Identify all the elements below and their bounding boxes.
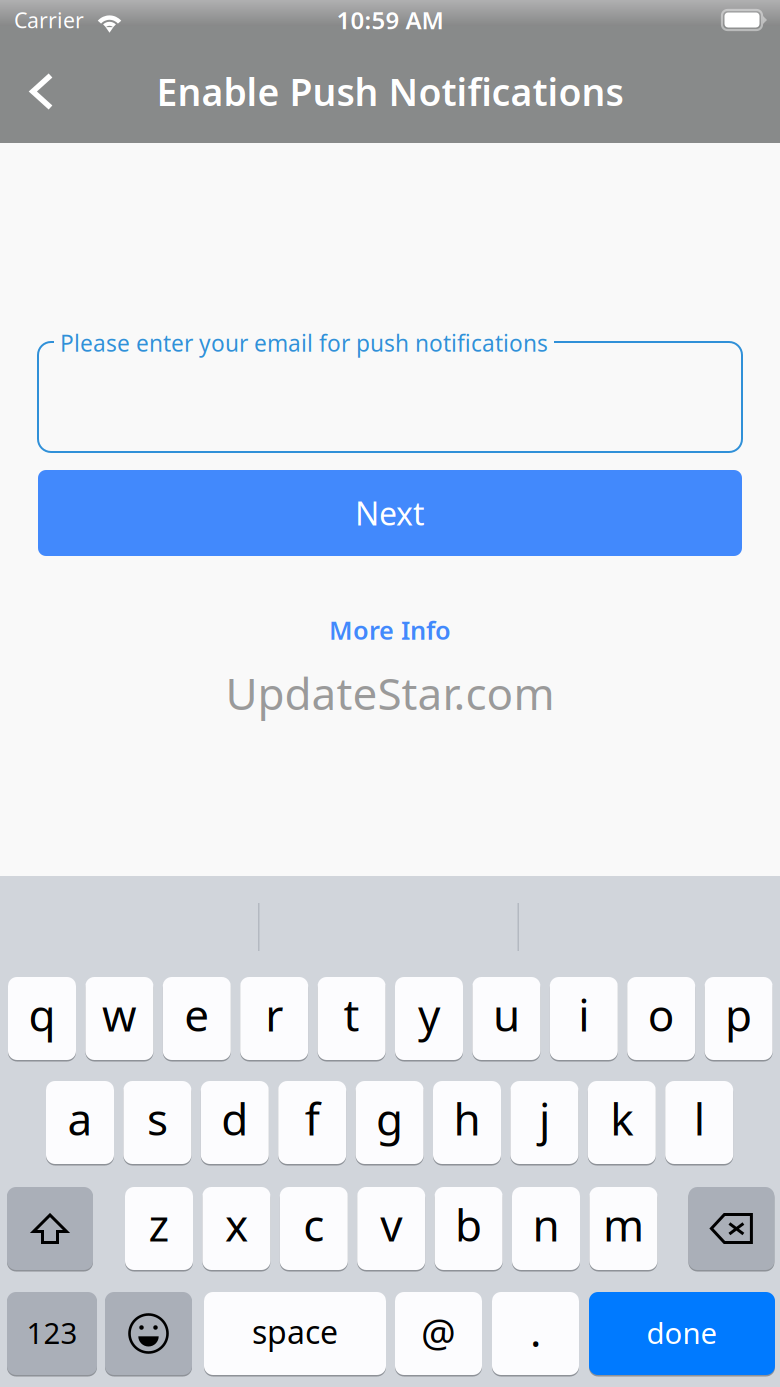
staticText: .	[530, 1302, 541, 1359]
button[interactable]: e	[163, 977, 231, 1060]
button[interactable]: z	[125, 1187, 193, 1270]
button[interactable]: Delete	[688, 1187, 774, 1270]
staticText: q	[28, 985, 55, 1044]
staticText: 10:59 AM	[336, 4, 443, 36]
button[interactable]: done	[589, 1292, 775, 1375]
button[interactable]: s	[123, 1081, 191, 1164]
staticText: n	[532, 1195, 559, 1254]
button[interactable]: @	[395, 1292, 482, 1375]
button[interactable]: .	[492, 1292, 579, 1375]
button[interactable]: w	[85, 977, 153, 1060]
staticText: UpdateStar.com	[225, 664, 554, 722]
button[interactable]: a	[46, 1081, 114, 1164]
staticText: space	[252, 1310, 338, 1353]
staticText: h	[453, 1089, 480, 1148]
staticText: v	[380, 1195, 402, 1254]
button[interactable]: 123	[7, 1292, 97, 1375]
button[interactable]: v	[357, 1187, 425, 1270]
staticText: c	[303, 1195, 324, 1254]
staticText: w	[102, 985, 137, 1044]
button[interactable]: Shift	[7, 1187, 93, 1270]
staticText: @	[421, 1306, 456, 1357]
staticText: u	[493, 985, 520, 1044]
staticText: f	[305, 1089, 320, 1148]
staticText: r	[265, 985, 283, 1044]
button[interactable]: y	[395, 977, 463, 1060]
staticText: y	[418, 985, 440, 1044]
staticText: Please enter your email for push notific…	[60, 328, 548, 358]
button[interactable]: t	[318, 977, 386, 1060]
staticText: l	[694, 1089, 705, 1148]
button[interactable]: h	[433, 1081, 501, 1164]
staticText: i	[578, 985, 589, 1044]
button[interactable]: k	[588, 1081, 656, 1164]
staticText: b	[455, 1195, 482, 1254]
staticText: k	[610, 1089, 633, 1148]
button[interactable]: q	[8, 977, 76, 1060]
button[interactable]: l	[665, 1081, 733, 1164]
button[interactable]: d	[201, 1081, 269, 1164]
button[interactable]: r	[240, 977, 308, 1060]
staticText: e	[184, 985, 209, 1044]
staticText: p	[725, 985, 752, 1044]
staticText: z	[148, 1195, 169, 1254]
staticText: d	[221, 1089, 248, 1148]
button[interactable]: Back	[0, 41, 71, 142]
button[interactable]: Next	[38, 470, 742, 556]
button[interactable]: n	[512, 1187, 580, 1270]
button[interactable]: space	[204, 1292, 386, 1375]
button[interactable]: c	[280, 1187, 348, 1270]
staticText: m	[603, 1195, 644, 1254]
staticText: More Info	[329, 613, 451, 647]
staticText: 123	[26, 1313, 77, 1352]
staticText: x	[225, 1195, 248, 1254]
button[interactable]: x	[202, 1187, 270, 1270]
button[interactable]: j	[510, 1081, 578, 1164]
staticText: done	[646, 1313, 717, 1352]
button[interactable]: p	[705, 977, 773, 1060]
button[interactable]: More Info	[38, 613, 742, 647]
staticText: a	[67, 1089, 92, 1148]
button[interactable]: b	[435, 1187, 503, 1270]
button[interactable]: g	[356, 1081, 424, 1164]
button[interactable]: m	[589, 1187, 657, 1270]
button[interactable]: Emoji	[105, 1292, 192, 1375]
button[interactable]: o	[627, 977, 695, 1060]
staticText: t	[344, 985, 360, 1044]
staticText: s	[147, 1089, 168, 1148]
staticText: o	[648, 985, 675, 1044]
button[interactable]: i	[550, 977, 618, 1060]
staticText: j	[539, 1089, 550, 1148]
staticText: g	[376, 1089, 403, 1148]
staticText: Enable Push Notifications	[156, 67, 623, 116]
button[interactable]: u	[472, 977, 540, 1060]
button[interactable]: f	[278, 1081, 346, 1164]
staticText: Next	[355, 492, 425, 534]
staticText: Carrier	[14, 6, 84, 34]
